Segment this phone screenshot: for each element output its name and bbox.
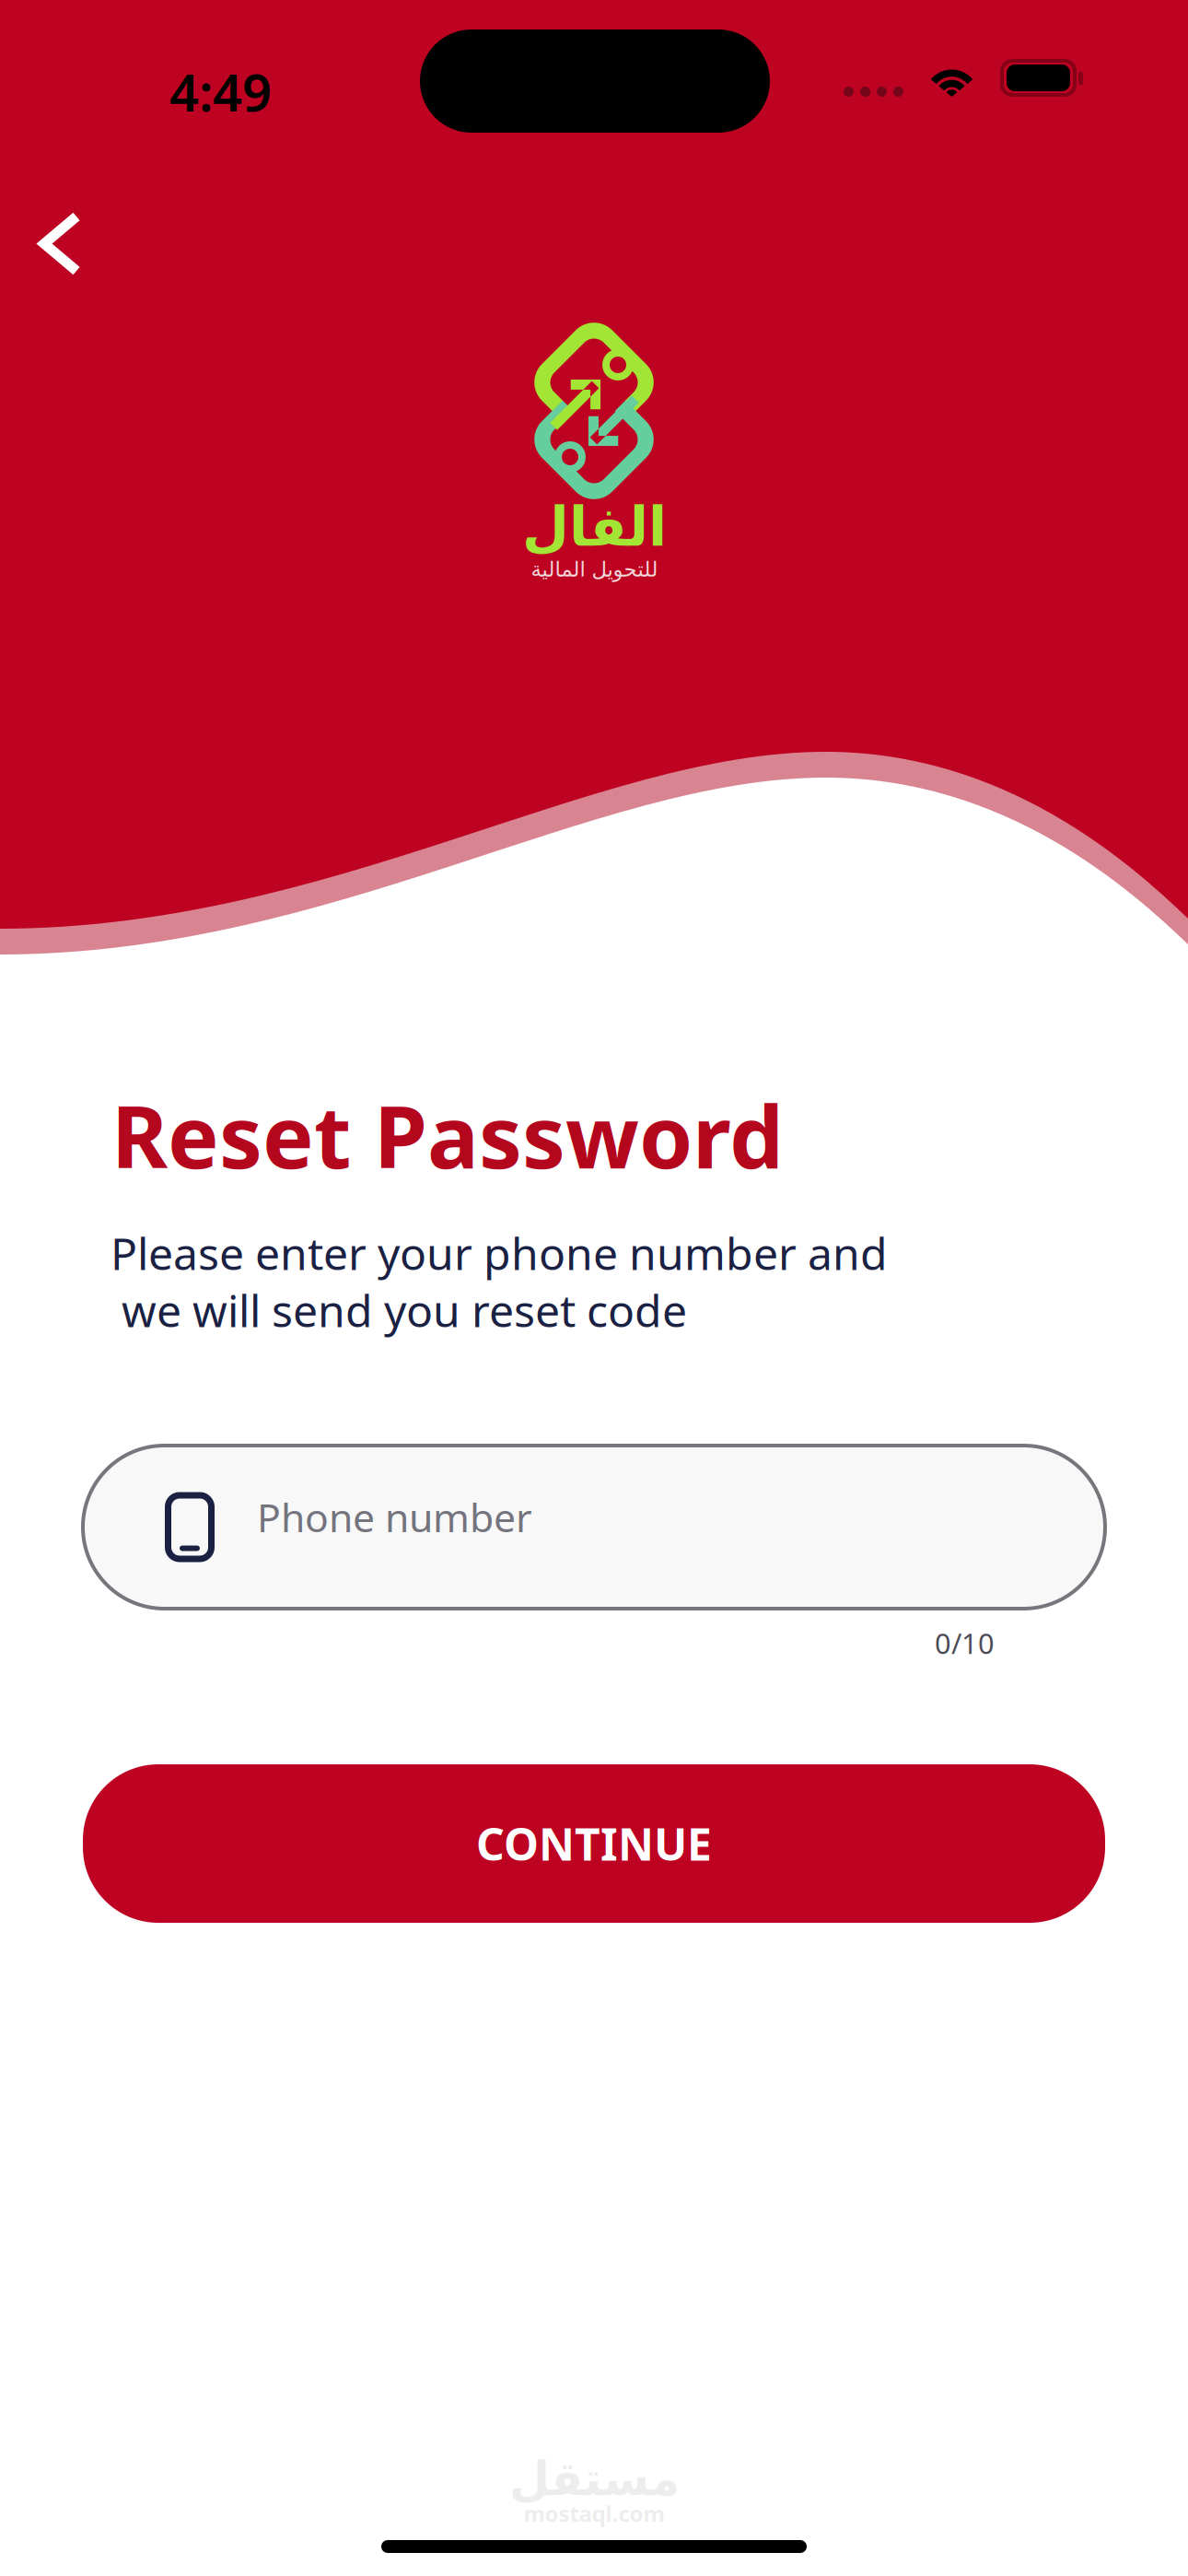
staticText: الفال: [522, 496, 666, 558]
staticText: CONTINUE: [476, 1814, 712, 1873]
staticText: we will send you reset code: [111, 1281, 687, 1339]
staticText: 4:49: [169, 57, 272, 126]
staticText: Reset Password: [111, 1078, 784, 1192]
staticText: mostaql.com: [524, 2499, 664, 2528]
staticText: Please enter your phone number and: [111, 1224, 888, 1282]
staticText: Phone number: [257, 1491, 532, 1543]
staticText: مستقل: [509, 2453, 679, 2506]
staticText: 0/10: [935, 1624, 995, 1662]
button[interactable]: CONTINUE: [83, 1764, 1105, 1923]
button[interactable]: Back: [0, 180, 118, 308]
staticText: للتحويل المالية: [530, 557, 658, 581]
